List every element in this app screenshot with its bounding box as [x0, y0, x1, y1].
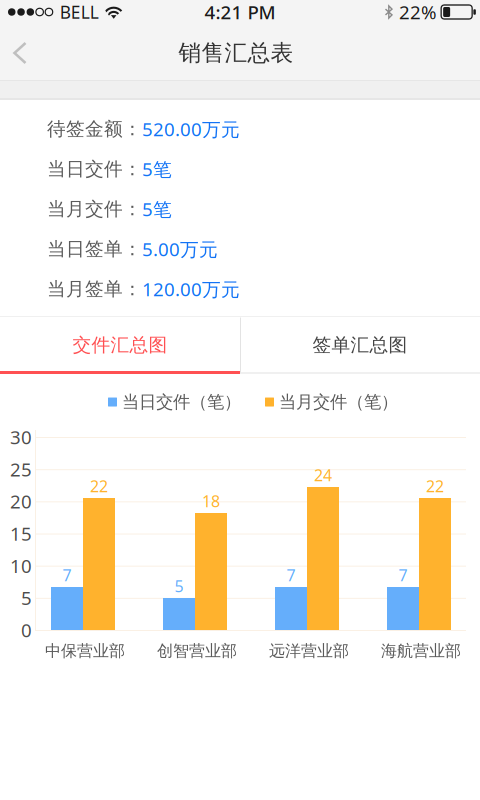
staticText: 远洋营业部	[269, 641, 349, 661]
staticText: 25	[10, 457, 32, 482]
button[interactable]: 返回	[0, 24, 44, 79]
staticText: 7	[286, 564, 295, 586]
staticText: 当月签单：	[47, 277, 142, 300]
staticText: 20	[10, 489, 32, 514]
staticText: 22	[90, 475, 108, 497]
staticText: 当月交件：	[47, 197, 142, 220]
staticText: 0	[21, 618, 32, 642]
staticText: 待签金额：	[47, 117, 142, 140]
staticText: 24	[314, 464, 332, 486]
staticText: 5	[174, 575, 183, 597]
staticText: 销售汇总表	[178, 39, 293, 67]
staticText: 120.00万元	[142, 277, 240, 301]
staticText: 5	[21, 585, 32, 610]
button[interactable]: 交件汇总图	[0, 316, 240, 374]
staticText: 5笔	[142, 197, 172, 221]
staticText: 4:21 PM	[204, 0, 275, 24]
staticText: 15	[10, 521, 32, 546]
staticText: BELL	[60, 0, 99, 23]
staticText: 交件汇总图	[72, 333, 167, 356]
staticText: 10	[10, 553, 32, 578]
staticText: 22	[426, 475, 444, 497]
staticText: 520.00万元	[142, 117, 240, 141]
staticText: 创智营业部	[157, 641, 237, 661]
button[interactable]: 签单汇总图	[240, 316, 480, 374]
staticText: 当日签单：	[47, 237, 142, 260]
staticText: 7	[398, 564, 407, 586]
staticText: 当月交件（笔）	[279, 391, 398, 413]
staticText: 7	[62, 564, 71, 586]
staticText: 当日交件（笔）	[122, 391, 241, 413]
staticText: 5笔	[142, 157, 172, 181]
staticText: 签单汇总图	[312, 333, 407, 356]
staticText: 海航营业部	[381, 641, 461, 661]
staticText: 5.00万元	[142, 237, 218, 261]
staticText: 中保营业部	[45, 641, 125, 661]
staticText: 当日交件：	[47, 157, 142, 180]
staticText: 18	[202, 490, 220, 512]
staticText: 30	[10, 425, 32, 449]
staticText: 22%	[399, 0, 437, 24]
